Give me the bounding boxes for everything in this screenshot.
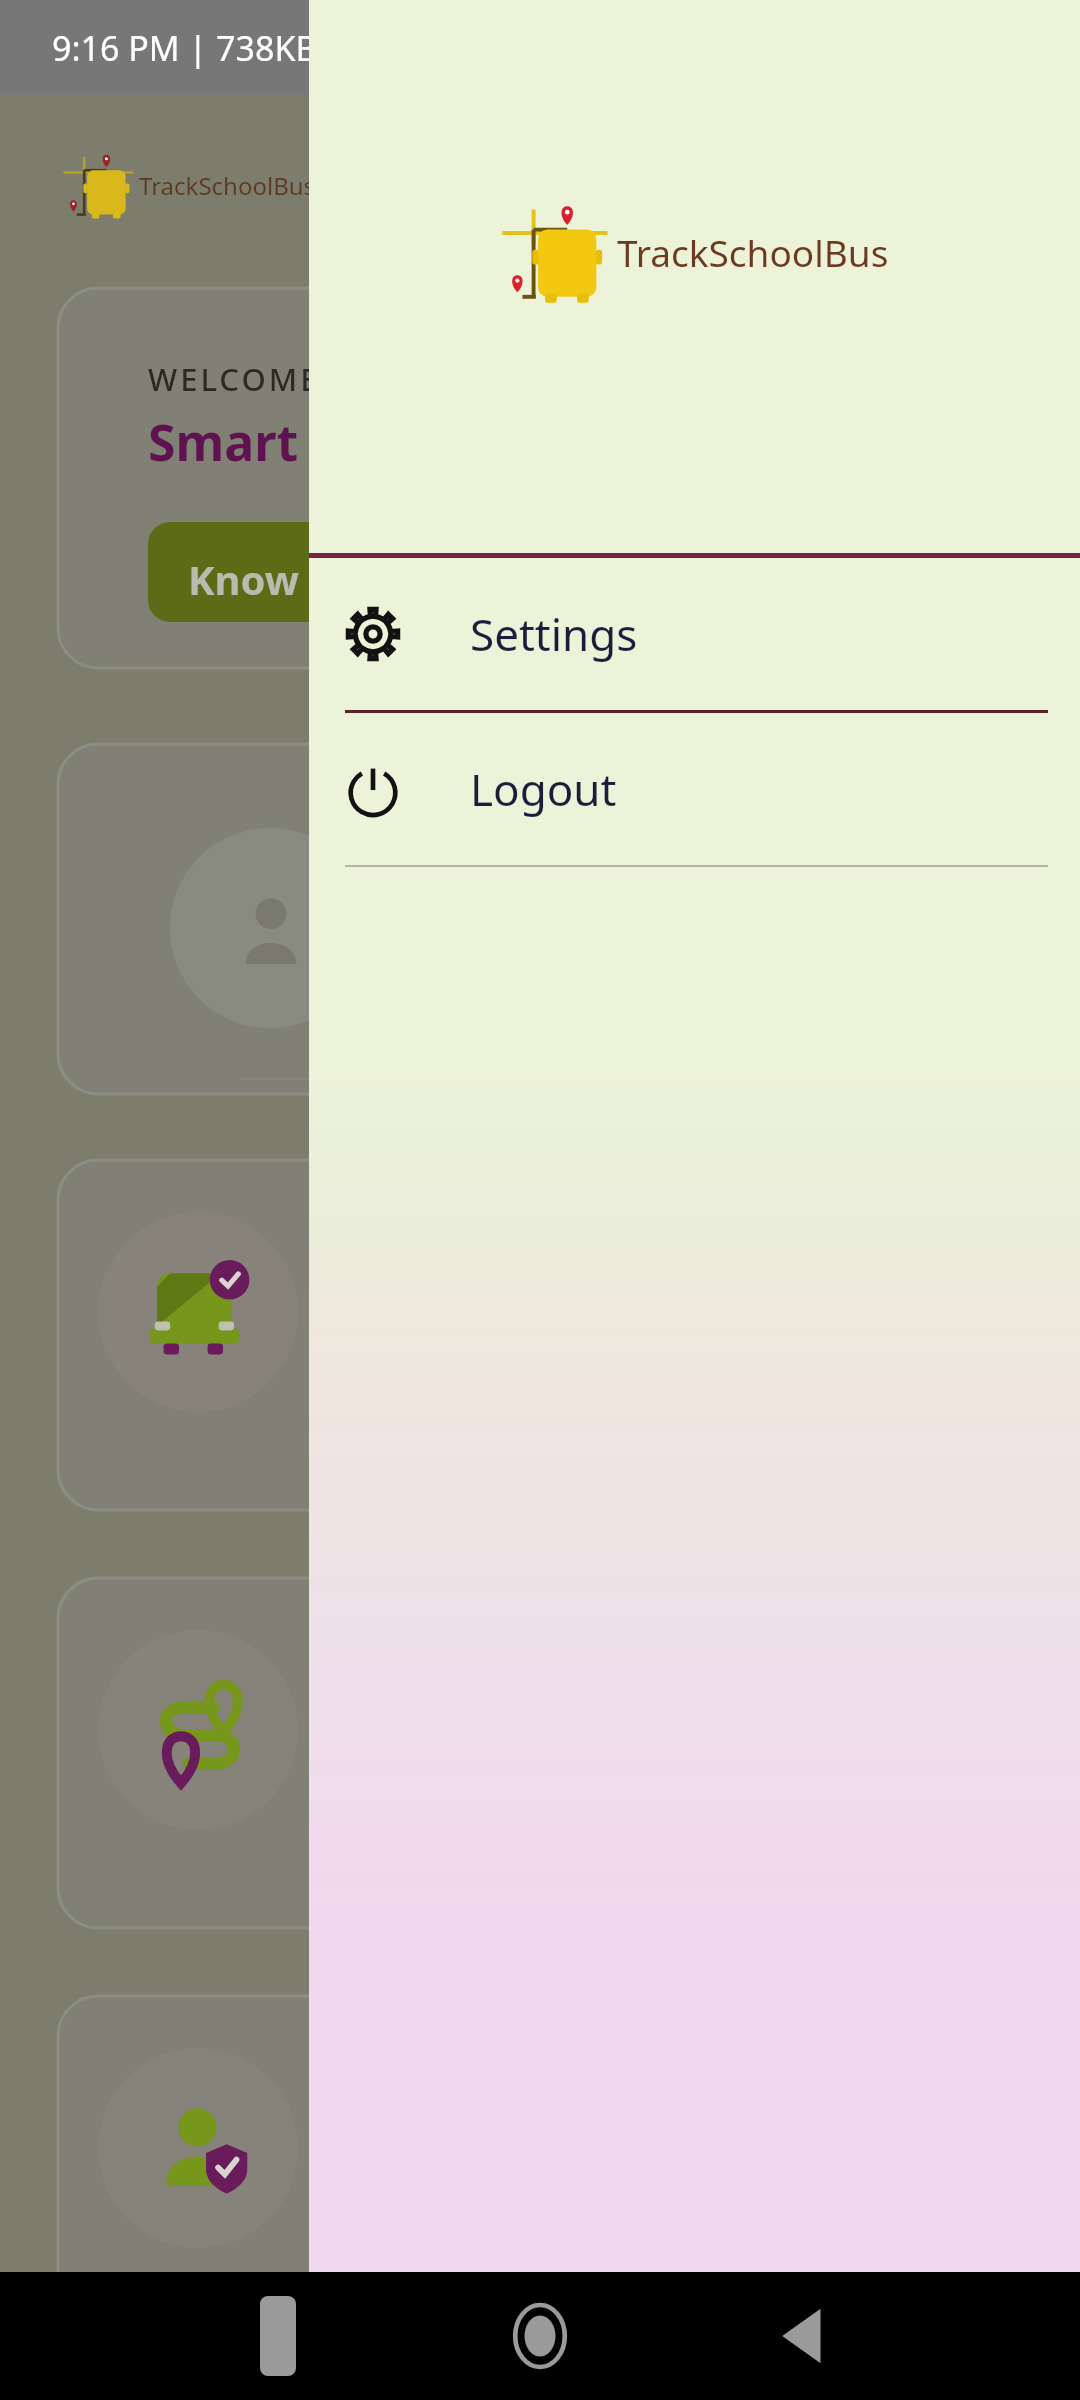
staticText: Logout: [470, 759, 617, 819]
staticText: TrackSchoolBus: [617, 227, 889, 277]
button[interactable]: Settings: [309, 558, 1080, 713]
other: Logout: [342, 758, 404, 820]
button[interactable]: Logout: [309, 713, 1080, 867]
staticText: Know: [188, 552, 299, 606]
other: Settings: [342, 603, 404, 665]
button[interactable]: Recent apps: [233, 2291, 323, 2381]
staticText: Smart S: [148, 408, 339, 476]
staticText: 9:16 PM | 738KB/s: [52, 25, 347, 71]
button[interactable]: Back: [757, 2291, 847, 2381]
staticText: TrackSchoolBus: [139, 169, 316, 202]
staticText: Settings: [470, 604, 638, 664]
staticText: WELCOME TO: [148, 358, 379, 400]
button[interactable]: Home: [495, 2291, 585, 2381]
